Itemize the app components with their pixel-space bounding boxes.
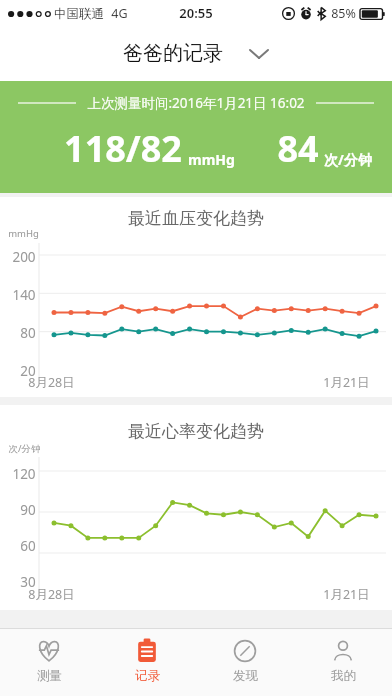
staticText: 60 xyxy=(20,537,36,555)
staticText: 118/82 xyxy=(64,124,182,173)
staticText: 200 xyxy=(12,248,36,266)
staticText: 20 xyxy=(20,362,36,380)
button[interactable]: 发现 xyxy=(196,629,294,696)
staticText: 4G xyxy=(111,5,128,22)
button[interactable]: 最近血压变化趋势 xyxy=(0,197,392,397)
staticText: 发现 xyxy=(233,668,258,684)
staticText: 次/分钟 xyxy=(8,442,41,455)
staticText: 140 xyxy=(12,286,36,304)
button[interactable]: 记录 xyxy=(98,629,196,696)
button[interactable]: 我的 xyxy=(294,629,392,696)
staticText: 测量 xyxy=(37,668,62,684)
staticText: 爸爸的记录 xyxy=(123,41,223,66)
staticText: 84 xyxy=(277,124,319,173)
staticText: 次/分钟 xyxy=(324,150,372,169)
other: 测量 xyxy=(36,638,62,664)
staticText: 85% xyxy=(331,5,356,22)
staticText: 上次测量时间:2016年1月21日 16:02 xyxy=(87,94,305,112)
staticText: 最近血压变化趋势 xyxy=(128,208,264,229)
other: 发现 xyxy=(232,638,258,664)
button[interactable]: 最近心率变化趋势 xyxy=(0,405,392,610)
staticText: 20:55 xyxy=(179,4,213,22)
staticText: 8月28日 xyxy=(28,586,75,603)
staticText: 1月21日 xyxy=(323,586,370,603)
staticText: 我的 xyxy=(331,668,356,684)
staticText: mmHg xyxy=(188,150,235,169)
staticText: 记录 xyxy=(135,668,160,684)
staticText: 中国联通 xyxy=(54,6,104,22)
staticText: 1月21日 xyxy=(323,374,370,391)
staticText: 30 xyxy=(20,573,36,591)
staticText: 80 xyxy=(20,324,36,342)
staticText: 8月28日 xyxy=(28,374,75,391)
staticText: 90 xyxy=(20,501,36,519)
staticText: mmHg xyxy=(8,227,39,240)
button[interactable]: 上次测量时间:2016年1月21日 16:02 xyxy=(0,81,392,193)
staticText: 最近心率变化趋势 xyxy=(128,421,264,442)
staticText: 120 xyxy=(12,465,36,483)
other: 记录 xyxy=(134,638,160,664)
button[interactable]: 测量 xyxy=(0,629,98,696)
button[interactable]: 爸爸的记录 xyxy=(0,26,392,81)
other: 我的 xyxy=(330,638,356,664)
